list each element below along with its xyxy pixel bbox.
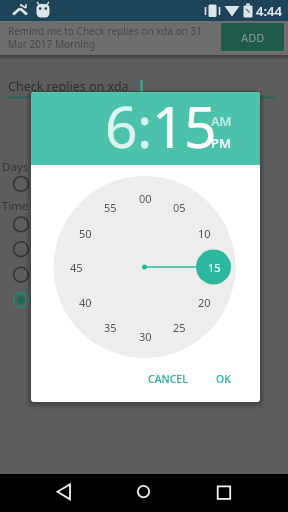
button[interactable]: ADD <box>221 23 284 51</box>
button[interactable]: OK <box>205 363 241 395</box>
staticText: 20 <box>198 295 211 310</box>
button[interactable]: 30 <box>133 328 157 344</box>
staticText: 55 <box>104 200 117 215</box>
staticText: Days <box>2 159 29 175</box>
staticText: 35 <box>104 320 117 335</box>
button[interactable]: 10 <box>192 225 216 241</box>
button[interactable]: 25 <box>167 319 191 335</box>
staticText: 6: <box>105 92 152 160</box>
staticText: Check replies on xda <box>8 78 129 95</box>
staticText: CANCEL <box>148 372 188 386</box>
staticText: 4:44 <box>256 2 282 20</box>
button[interactable]: 55 <box>98 199 122 215</box>
staticText: 45 <box>70 260 83 275</box>
button[interactable]: CANCEL <box>137 363 199 395</box>
button[interactable]: 15 <box>202 259 226 275</box>
button[interactable]: 00 <box>133 190 157 206</box>
staticText: 40 <box>79 295 92 310</box>
button[interactable]: 40 <box>73 294 97 310</box>
staticText: 15 <box>208 260 221 275</box>
staticText: 10 <box>198 226 211 241</box>
staticText: OK <box>216 372 231 386</box>
staticText: ADD <box>241 30 265 45</box>
staticText: 05 <box>173 200 186 215</box>
staticText: 30 <box>139 329 152 344</box>
staticText: Mar 2017 Morning <box>8 37 96 51</box>
button[interactable] <box>192 474 288 512</box>
button[interactable] <box>0 474 96 512</box>
staticText: Remind me to Check replies on xda on 31 <box>8 24 202 38</box>
staticText: 15 <box>152 92 217 160</box>
button[interactable]: AM <box>211 112 232 130</box>
button[interactable]: 35 <box>98 319 122 335</box>
staticText: 25 <box>173 320 186 335</box>
button[interactable]: 05 <box>167 199 191 215</box>
button[interactable]: 50 <box>73 225 97 241</box>
button[interactable]: 45 <box>64 259 88 275</box>
button[interactable]: PM <box>211 134 231 152</box>
staticText: 50 <box>79 226 92 241</box>
button[interactable]: 20 <box>192 294 216 310</box>
staticText: 00 <box>139 191 152 206</box>
button[interactable] <box>96 474 192 512</box>
staticText: Time <box>2 198 29 214</box>
